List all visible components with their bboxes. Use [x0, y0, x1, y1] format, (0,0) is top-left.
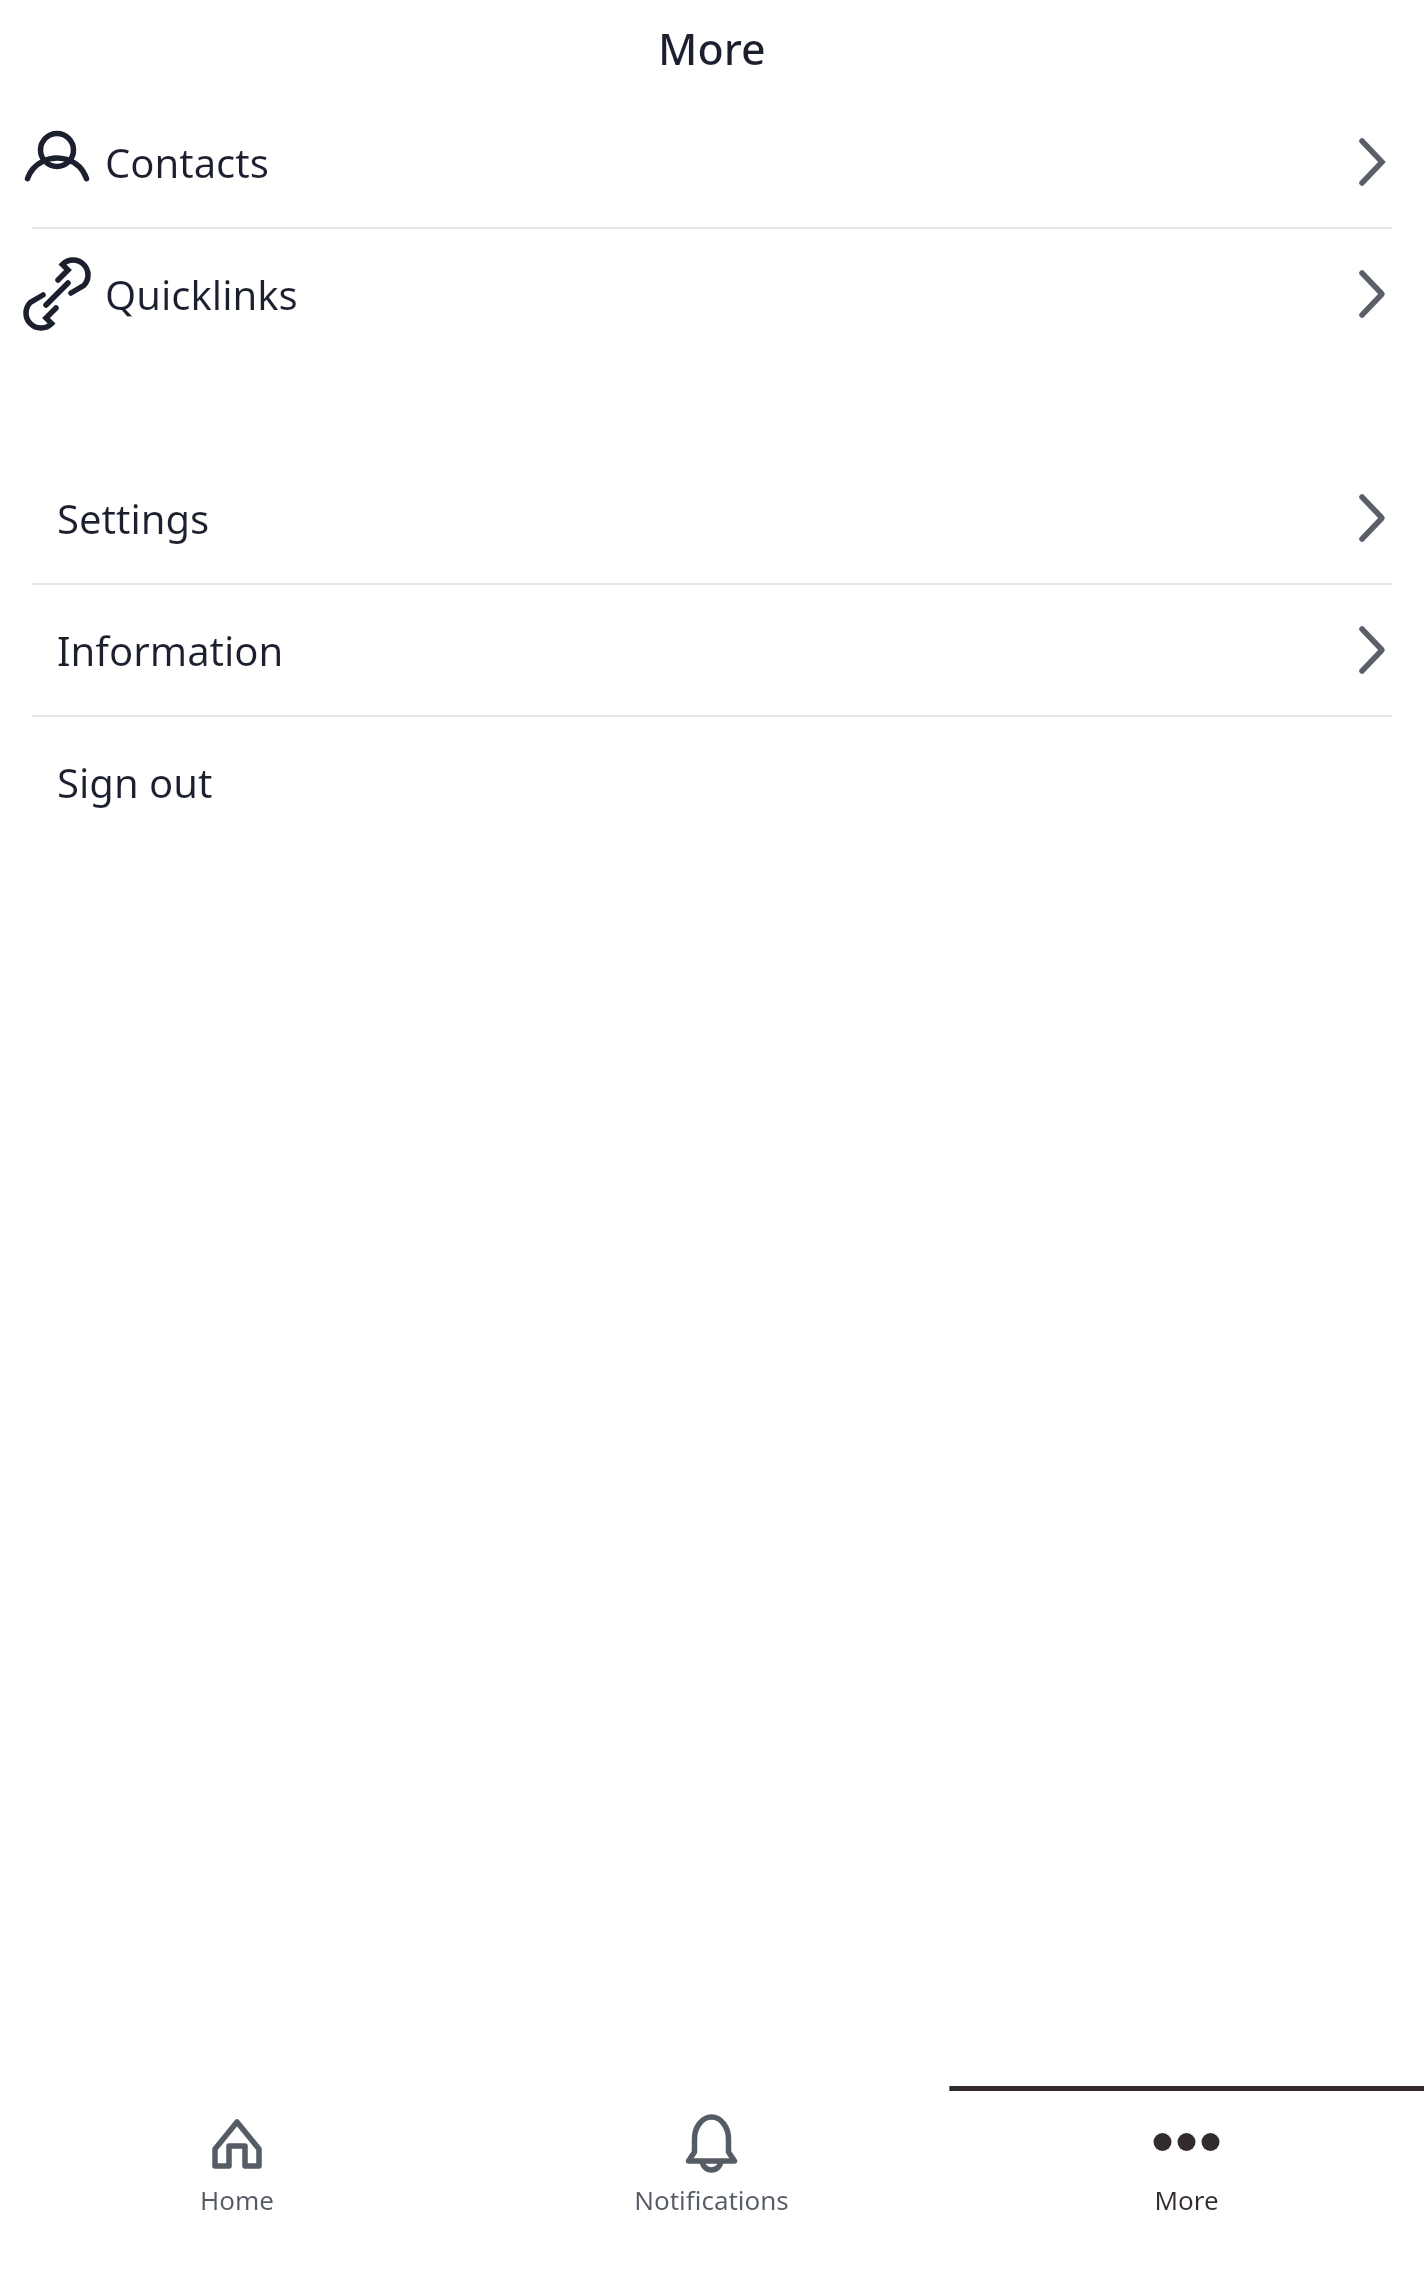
staticText: Notifications — [634, 2182, 789, 2217]
staticText: Quicklinks — [105, 267, 298, 321]
staticText: Home — [200, 2182, 274, 2217]
staticText: Sign out — [57, 755, 213, 809]
staticText: Information — [57, 623, 284, 677]
staticText: More — [1154, 2182, 1219, 2217]
button[interactable]: Sign out — [0, 717, 1424, 847]
button[interactable]: Information — [0, 585, 1424, 715]
button[interactable]: Quicklinks — [0, 229, 1424, 359]
staticText: More — [658, 19, 766, 78]
button[interactable]: More — [949, 2086, 1424, 2276]
button[interactable]: Home — [0, 2086, 474, 2276]
staticText: Contacts — [105, 135, 269, 189]
button[interactable]: Notifications — [474, 2086, 949, 2276]
button[interactable]: Contacts — [0, 97, 1424, 227]
button[interactable]: Settings — [0, 453, 1424, 583]
staticText: Settings — [57, 491, 210, 545]
